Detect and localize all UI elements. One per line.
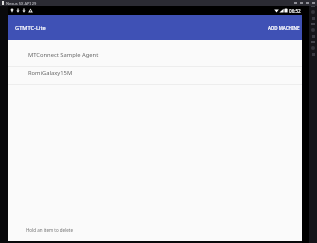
button[interactable]: Window control	[293, 1, 297, 5]
button[interactable]: More	[309, 51, 317, 57]
button[interactable]: Window control	[299, 1, 303, 5]
button[interactable]: RomiGalaxy15M	[8, 67, 302, 85]
button[interactable]: Rotate left	[309, 27, 317, 33]
button[interactable]: ADD MACHINE	[266, 20, 302, 36]
button[interactable]: Window control	[305, 1, 309, 5]
button[interactable]: Rotate right	[309, 33, 317, 39]
button[interactable]: Power	[309, 9, 317, 15]
button[interactable]: Volume down	[309, 21, 317, 27]
staticText: Nexus 5X API 29	[6, 1, 37, 6]
button[interactable]: Close	[309, 3, 317, 9]
button[interactable]: Camera	[309, 45, 317, 51]
button[interactable]: Window control	[311, 1, 315, 5]
button[interactable]: Screenshot	[309, 39, 317, 45]
staticText: RomiGalaxy15M	[28, 69, 73, 77]
staticText: GTMTC-Lite	[15, 24, 46, 32]
staticText: MTConnect Sample Agent	[28, 51, 99, 59]
staticText: Hold an item to delete	[26, 227, 74, 233]
staticText: 06:52	[289, 8, 301, 14]
staticText: ADD MACHINE	[268, 25, 300, 31]
button[interactable]: MTConnect Sample Agent	[8, 49, 302, 67]
button[interactable]: Volume up	[309, 15, 317, 21]
